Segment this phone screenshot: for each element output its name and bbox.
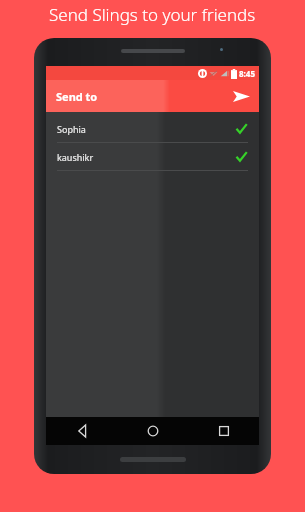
button[interactable]: Back xyxy=(46,417,117,445)
button[interactable]: Sophia xyxy=(46,115,259,142)
button[interactable]: Home xyxy=(117,417,188,445)
staticText: Send Slings to your friends xyxy=(49,3,256,26)
button[interactable]: Recent apps xyxy=(188,417,259,445)
staticText: 8:45 xyxy=(239,68,255,79)
button[interactable]: Send xyxy=(230,85,252,107)
staticText: Sophia xyxy=(57,123,86,135)
staticText: Send to xyxy=(56,89,98,104)
staticText: kaushikr xyxy=(57,151,94,163)
button[interactable]: kaushikr xyxy=(46,143,259,170)
button[interactable]: Send to xyxy=(46,80,259,112)
